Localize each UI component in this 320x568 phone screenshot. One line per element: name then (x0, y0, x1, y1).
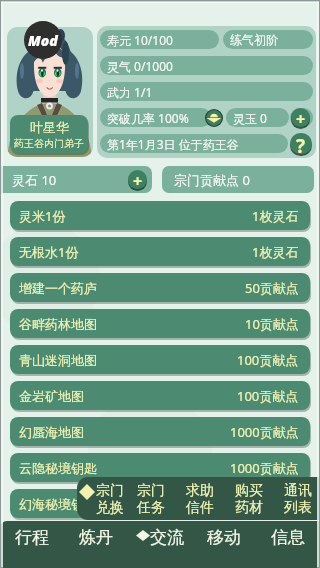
button[interactable]: 幻海秘境钥匙 (10, 489, 310, 518)
staticText: Mod (28, 31, 58, 50)
staticText: + (133, 170, 143, 189)
button[interactable]: 信息 (256, 521, 320, 568)
staticText: 50贡献点 (245, 279, 299, 297)
staticText: 通讯 列表 (284, 482, 312, 516)
button[interactable]: Mod (24, 21, 62, 59)
button[interactable]: 购买 药材 (224, 477, 273, 520)
staticText: 第1年1月3日 位于药王谷 (107, 136, 239, 152)
staticText: 宗门贡献点 0 (174, 171, 250, 189)
staticText: + (296, 108, 306, 127)
staticText: 宗门 兑换 (96, 482, 124, 516)
button[interactable]: 炼丹 (64, 521, 128, 568)
staticText: 移动 (207, 527, 241, 548)
staticText: 练气初阶 (230, 32, 278, 47)
button[interactable]: 金岩矿地图 (10, 381, 310, 410)
staticText: ? (296, 133, 306, 154)
button[interactable]: 谷畔药林地图 (10, 309, 310, 338)
button[interactable]: 灵玉 0 (226, 108, 289, 127)
button[interactable]: Add spirit stones (128, 170, 147, 189)
staticText: 云隐秘境钥匙 (19, 460, 97, 476)
staticText: 增建一个药庐 (19, 280, 97, 296)
button[interactable]: 求助 信件 (175, 477, 224, 520)
staticText: 灵石 10 (12, 171, 57, 189)
staticText: 100贡献点 (237, 387, 299, 405)
staticText: 炼丹 (79, 527, 113, 548)
staticText: 信息 (271, 527, 305, 548)
button[interactable]: 宗门贡献点 0 (162, 166, 314, 193)
button[interactable]: 武力 1/1 (100, 82, 313, 101)
staticText: 交流 (150, 527, 184, 548)
button[interactable]: 无根水1份 (10, 237, 310, 266)
button[interactable]: 灵米1份 (10, 201, 310, 230)
staticText: 求助 信件 (186, 482, 214, 516)
staticText: 10贡献点 (245, 315, 299, 333)
button[interactable]: 云隐秘境钥匙 (10, 453, 310, 482)
staticText: 武力 1/1 (107, 84, 153, 100)
staticText: 突破几率 100% (107, 110, 189, 126)
staticText: 1000贡献点 (230, 423, 299, 441)
staticText: 灵米1份 (19, 207, 66, 225)
button[interactable]: Help (290, 133, 312, 154)
staticText: 幻蜃海地图 (19, 424, 84, 440)
button[interactable]: Character avatar (7, 27, 93, 157)
button[interactable]: 宗门 兑换 (78, 477, 126, 520)
staticText: 寿元 10/100 (107, 32, 173, 48)
staticText: 青山迷洞地图 (19, 352, 97, 368)
button[interactable]: 移动 (192, 521, 256, 568)
staticText: 灵气 0/1000 (107, 58, 173, 74)
button[interactable]: 第1年1月3日 位于药王谷 (100, 134, 288, 153)
button[interactable]: 通讯 列表 (273, 477, 320, 520)
button[interactable]: 宗门 任务 (126, 477, 175, 520)
button[interactable]: 青山迷洞地图 (10, 345, 310, 374)
staticText: 药王谷内门弟子 (14, 137, 84, 150)
button[interactable]: 灵气 0/1000 (100, 56, 313, 75)
staticText: 无根水1份 (19, 243, 79, 261)
button[interactable]: 灵石 10 (0, 166, 152, 193)
button[interactable]: 寿元 10/100 (100, 30, 219, 49)
staticText: 金岩矿地图 (19, 388, 84, 404)
button[interactable]: 交流 (128, 521, 192, 568)
staticText: 1枚灵石 (252, 207, 299, 225)
staticText: 100贡献点 (237, 351, 299, 369)
staticText: 灵玉 0 (233, 110, 267, 126)
staticText: 1000贡献点 (230, 459, 299, 477)
button[interactable]: 幻蜃海地图 (10, 417, 310, 446)
staticText: 1枚灵石 (252, 243, 299, 261)
button[interactable]: Add spirit jade (291, 108, 310, 127)
staticText: 宗门 任务 (137, 482, 165, 516)
staticText: 1000贡献点 (230, 495, 299, 513)
staticText: 叶星华 (30, 119, 69, 135)
staticText: 行程 (15, 527, 49, 548)
staticText: 谷畔药林地图 (19, 316, 97, 332)
staticText: 幻海秘境钥匙 (19, 496, 97, 512)
button[interactable]: 行程 (0, 521, 64, 568)
button[interactable]: 增建一个药庐 (10, 273, 310, 302)
button[interactable]: 练气初阶 (223, 30, 313, 49)
staticText: 购买 药材 (235, 482, 263, 516)
button[interactable]: 突破几率 100% (100, 108, 211, 127)
